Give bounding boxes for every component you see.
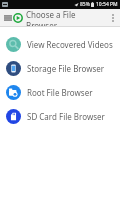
staticText: 85%	[80, 1, 90, 8]
button[interactable]: Storage File Browser	[0, 56, 120, 80]
button[interactable]: Root File Browser	[0, 80, 120, 104]
staticText: Storage File Browser	[27, 63, 105, 74]
staticText: 10:54 PM	[96, 1, 118, 8]
staticText: View Recovered Videos	[27, 39, 113, 50]
staticText: Root File Browser	[27, 87, 93, 98]
button[interactable]: App logo	[13, 13, 23, 23]
button[interactable]: Open navigation drawer	[2, 12, 13, 23]
staticText: SD Card File Browser	[27, 111, 105, 122]
button[interactable]: More options	[107, 9, 119, 26]
staticText: Choose a File Browser	[26, 9, 107, 26]
button[interactable]: SD Card File Browser	[0, 104, 120, 128]
button[interactable]: View Recovered Videos	[0, 32, 120, 56]
